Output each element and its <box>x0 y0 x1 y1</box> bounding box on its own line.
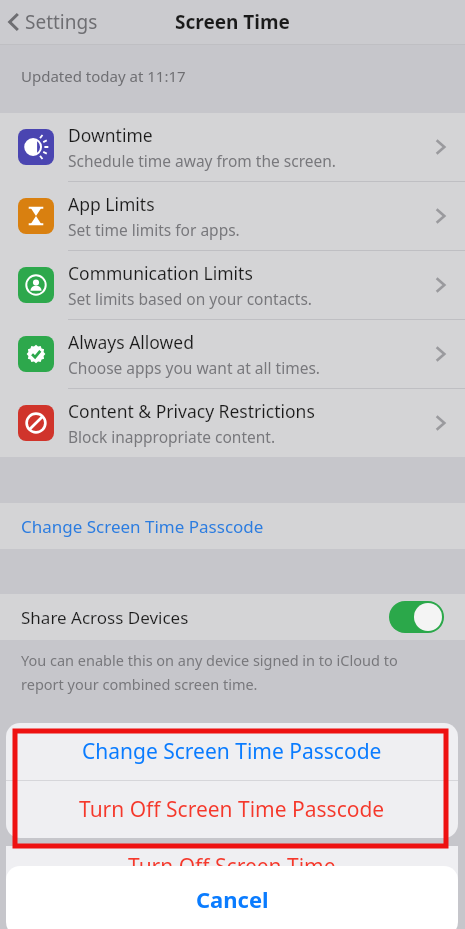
staticText: Screen Time <box>175 9 290 35</box>
staticText: Turn Off Screen Time <box>128 852 336 881</box>
staticText: Communication Limits <box>68 261 253 285</box>
staticText: Schedule time away from the screen. <box>68 150 336 171</box>
staticText: You can enable this on any device signed… <box>21 650 398 670</box>
staticText: Cancel <box>196 884 269 914</box>
button[interactable]: Change Screen Time Passcode <box>0 503 465 549</box>
staticText: Turn Off Screen Time Passcode <box>79 795 385 824</box>
staticText: Choose apps you want at all times. <box>68 357 320 378</box>
staticText: App Limits <box>68 192 155 216</box>
button[interactable]: Always Allowed <box>0 320 465 388</box>
staticText: Downtime <box>68 123 153 147</box>
button[interactable]: Settings <box>0 5 106 39</box>
button[interactable]: Turn Off Screen Time <box>6 846 458 902</box>
staticText: Set time limits for apps. <box>68 219 240 240</box>
button[interactable]: Communication Limits <box>0 251 465 319</box>
staticText: Always Allowed <box>68 330 194 354</box>
button[interactable]: App Limits <box>0 182 465 250</box>
staticText: Block inappropriate content. <box>68 426 276 447</box>
button[interactable]: Cancel <box>6 866 458 929</box>
other: Share Across Devices toggle, on <box>389 601 444 633</box>
staticText: Set limits based on your contacts. <box>68 288 312 309</box>
button[interactable]: Turn Off Screen Time Passcode <box>6 781 458 838</box>
staticText: Change Screen Time Passcode <box>82 737 382 766</box>
staticText: Share Across Devices <box>21 606 189 629</box>
staticText: Updated today at 11:17 <box>21 66 186 86</box>
button[interactable]: Content & Privacy Restrictions <box>0 389 465 457</box>
button[interactable]: Downtime <box>0 113 465 181</box>
button[interactable]: Change Screen Time Passcode <box>6 723 458 780</box>
button[interactable]: Share Across Devices <box>0 594 465 640</box>
staticText: Content & Privacy Restrictions <box>68 399 315 423</box>
staticText: Change Screen Time Passcode <box>21 515 264 538</box>
staticText: report your combined screen time. <box>21 674 258 694</box>
staticText: Settings <box>25 9 98 35</box>
